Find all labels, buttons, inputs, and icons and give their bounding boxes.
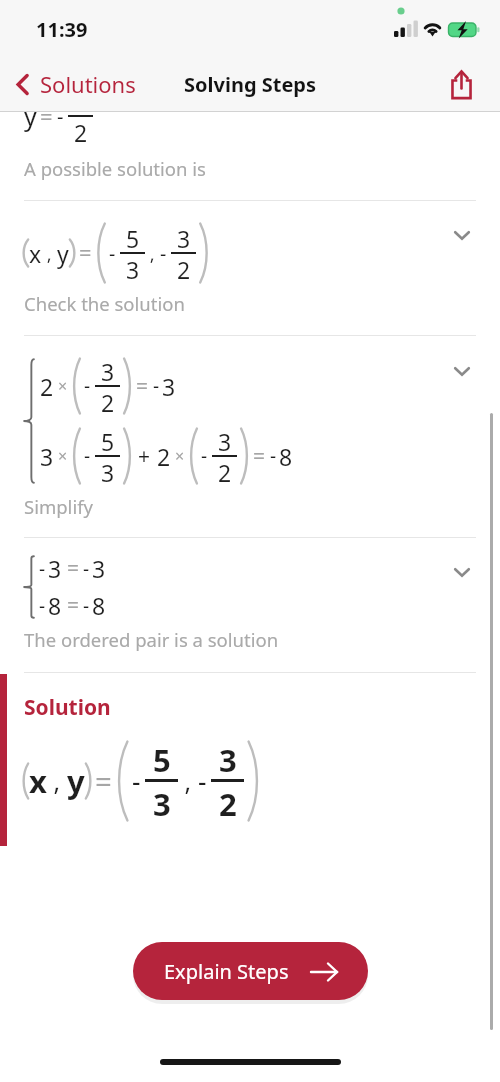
staticText: y [24, 99, 37, 133]
staticText: - [83, 593, 90, 619]
staticText: = [136, 372, 149, 401]
staticText: y [67, 760, 85, 802]
staticText: 2 [218, 457, 232, 488]
staticText: 5 [101, 426, 115, 457]
staticText: - [84, 373, 91, 399]
button[interactable]: Expand step [439, 213, 484, 258]
staticText: Solutions [40, 69, 136, 99]
staticText: - [83, 556, 90, 582]
staticText: y [57, 238, 69, 269]
button[interactable]: Explain Steps [133, 942, 368, 1000]
staticText: , [178, 764, 198, 798]
staticText: , [145, 241, 160, 266]
staticText: 5 [126, 223, 140, 254]
staticText: - [57, 103, 64, 130]
button[interactable]: Share [432, 56, 490, 112]
staticText: , [42, 241, 57, 266]
staticText: - [109, 240, 116, 267]
staticText: = [79, 238, 92, 268]
staticText: - [201, 443, 208, 469]
staticText: The ordered pair is a solution [24, 627, 279, 652]
staticText: = [67, 591, 80, 620]
staticText: 8 [48, 590, 62, 621]
staticText: = [40, 101, 53, 131]
staticText: 8 [92, 590, 106, 621]
staticText: Explain Steps [164, 958, 289, 985]
button[interactable]: Expand step [439, 349, 484, 394]
staticText: - [132, 763, 141, 799]
staticText: 3 [219, 739, 237, 781]
staticText: Solving Steps [184, 71, 317, 98]
staticText: 3 [101, 457, 115, 488]
staticText: 11:39 [36, 16, 88, 43]
staticText: Solution [24, 693, 111, 722]
staticText: 3 [40, 441, 54, 472]
staticText: + [138, 442, 151, 471]
staticText: - [153, 373, 160, 399]
staticText: Simplify [24, 494, 93, 519]
staticText: 2 [157, 441, 171, 472]
staticText: 3 [74, 86, 88, 117]
button[interactable]: Expand step [439, 550, 484, 595]
staticText: 2 [101, 387, 115, 418]
staticText: 3 [48, 553, 62, 584]
staticText: - [39, 556, 46, 582]
button[interactable]: Solutions [0, 56, 150, 112]
staticText: 3 [162, 371, 176, 402]
staticText: - [160, 240, 167, 267]
staticText: - [84, 443, 91, 469]
staticText: 3 [92, 553, 106, 584]
staticText: = [67, 554, 80, 583]
staticText: , [47, 764, 67, 798]
staticText: = [253, 442, 266, 471]
staticText: × [175, 445, 185, 467]
staticText: × [58, 375, 68, 397]
staticText: 3 [177, 223, 191, 254]
staticText: 3 [126, 254, 140, 285]
staticText: = [95, 761, 112, 801]
staticText: 3 [218, 426, 232, 457]
staticText: Check the solution [24, 291, 185, 316]
staticText: 2 [219, 783, 237, 825]
staticText: 2 [40, 371, 54, 402]
staticText: - [39, 593, 46, 619]
staticText: x [29, 238, 42, 269]
staticText: × [58, 445, 68, 467]
staticText: x [29, 760, 47, 802]
staticText: 2 [177, 254, 191, 285]
staticText: 3 [153, 783, 171, 825]
staticText: 5 [153, 739, 171, 781]
staticText: A possible solution is [24, 156, 206, 181]
staticText: - [270, 443, 277, 469]
staticText: - [198, 763, 207, 799]
staticText: 3 [101, 356, 115, 387]
staticText: 8 [279, 441, 293, 472]
staticText: 2 [74, 117, 88, 148]
